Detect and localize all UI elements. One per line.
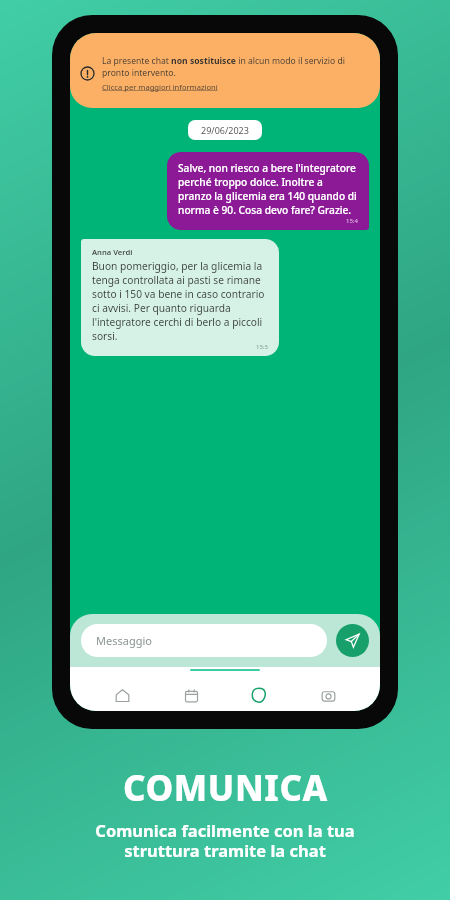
- staticText: Clicca per maggiori informazioni: [102, 82, 218, 92]
- staticText: La presente chat non sostituisce in alcu…: [102, 55, 366, 79]
- staticText: Buon pomeriggio, per la glicemia la teng…: [92, 259, 268, 343]
- button[interactable]: Anna Verdi: [81, 239, 279, 356]
- button[interactable]: Chat: [242, 679, 276, 711]
- button[interactable]: Profilo: [311, 679, 345, 711]
- staticText: 29/06/2023: [201, 124, 249, 136]
- button[interactable]: Calendario: [174, 679, 208, 711]
- button[interactable]: Home: [105, 679, 139, 711]
- other: Avviso: [80, 66, 95, 81]
- button[interactable]: Invia: [336, 624, 369, 657]
- button[interactable]: Messaggio: [81, 624, 327, 657]
- button[interactable]: Avviso: [70, 33, 380, 108]
- staticText: Salve, non riesco a bere l'integratore p…: [178, 161, 358, 217]
- staticText: Messaggio: [96, 633, 152, 648]
- staticText: 15:5: [256, 343, 268, 351]
- staticText: Comunica facilmente con la tua struttura…: [95, 819, 355, 862]
- staticText: Anna Verdi: [92, 247, 133, 257]
- staticText: COMUNICA: [123, 764, 328, 812]
- staticText: 15:4: [346, 217, 358, 225]
- button[interactable]: Salve, non riesco a bere l'integratore p…: [167, 152, 369, 230]
